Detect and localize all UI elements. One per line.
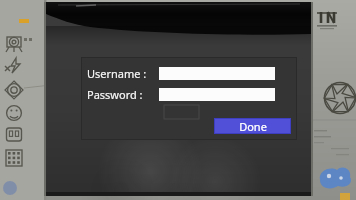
- staticText: Username :: [87, 66, 147, 81]
- staticText: Done: [239, 119, 267, 133]
- staticText: Password :: [87, 87, 143, 102]
- button[interactable]: Done: [215, 119, 290, 133]
